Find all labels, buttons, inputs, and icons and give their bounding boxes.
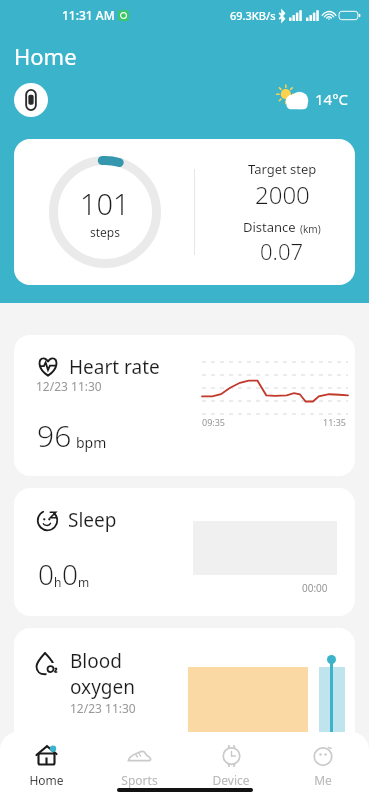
- staticText: 14°C: [315, 89, 349, 109]
- staticText: 11:31 AM: [62, 7, 115, 23]
- button[interactable]: Device: [14, 83, 48, 117]
- button[interactable]: Home: [0, 739, 93, 792]
- staticText: 96: [37, 415, 72, 456]
- staticText: Sleep: [68, 507, 117, 533]
- button[interactable]: Weather: [277, 84, 349, 114]
- staticText: (km): [300, 222, 321, 236]
- staticText: 12/23 11:30: [36, 378, 102, 394]
- staticText: 12/23 11:30: [70, 700, 136, 716]
- staticText: Home: [14, 41, 77, 71]
- staticText: 0: [62, 555, 78, 593]
- staticText: Home: [29, 772, 64, 788]
- staticText: Blood: [70, 648, 122, 674]
- button[interactable]: Device: [185, 739, 277, 792]
- staticText: Distance: [243, 218, 300, 236]
- staticText: 0: [38, 555, 54, 593]
- staticText: steps: [90, 224, 120, 240]
- staticText: 09:35: [202, 416, 226, 428]
- staticText: 2000: [255, 178, 310, 211]
- staticText: 11:35: [323, 416, 347, 428]
- staticText: Sports: [121, 772, 158, 788]
- button[interactable]: Me: [277, 739, 369, 792]
- button[interactable]: 101: [14, 139, 355, 285]
- staticText: Heart rate: [69, 354, 160, 380]
- staticText: Target step: [248, 160, 317, 178]
- staticText: Me: [314, 772, 332, 788]
- staticText: 0.07: [260, 236, 304, 266]
- button[interactable]: Blood: [14, 628, 355, 758]
- staticText: Device: [212, 772, 250, 788]
- staticText: oxygen: [70, 674, 135, 700]
- staticText: 00:00: [302, 581, 328, 595]
- staticText: 69.3KB/s: [230, 8, 276, 23]
- button[interactable]: Sports: [93, 739, 185, 792]
- staticText: h: [54, 574, 62, 590]
- staticText: bpm: [76, 433, 107, 452]
- button[interactable]: Sleep: [14, 488, 355, 616]
- button[interactable]: Heart rate: [14, 335, 355, 476]
- staticText: 101: [80, 184, 130, 223]
- staticText: m: [78, 574, 90, 590]
